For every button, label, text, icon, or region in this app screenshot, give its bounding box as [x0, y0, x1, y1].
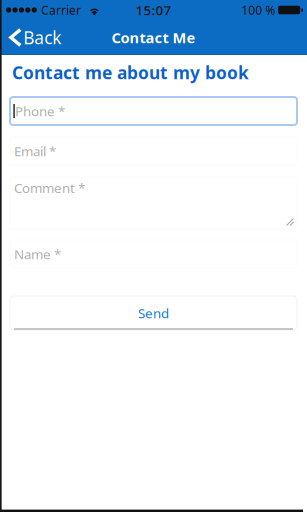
button[interactable]: Send: [10, 296, 297, 330]
staticText: Comment *: [14, 179, 85, 197]
staticText: Phone *: [15, 102, 65, 120]
staticText: 15:07: [135, 1, 171, 19]
button[interactable]: Phone *: [10, 97, 297, 125]
button[interactable]: Back: [0, 20, 71, 55]
staticText: 100 %: [241, 2, 275, 18]
button[interactable]: Name *: [10, 240, 297, 268]
staticText: Send: [138, 304, 169, 322]
staticText: Email *: [14, 142, 56, 160]
button[interactable]: Email *: [10, 137, 297, 165]
staticText: Carrier: [41, 2, 81, 18]
staticText: Contact me about my book: [12, 61, 249, 84]
staticText: Back: [23, 26, 61, 49]
staticText: Contact Me: [111, 28, 195, 47]
button[interactable]: Comment *: [10, 177, 297, 229]
staticText: Name *: [14, 245, 61, 263]
